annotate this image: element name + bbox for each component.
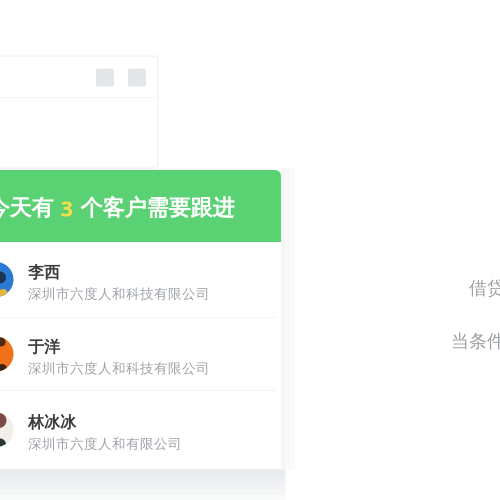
staticText: 李西 xyxy=(28,262,60,283)
button[interactable]: 李西 xyxy=(0,242,281,317)
staticText: 3 xyxy=(60,193,73,223)
staticText: 借贷 xyxy=(469,277,500,300)
staticText: 深圳市六度人和有限公司 xyxy=(28,436,182,453)
staticText: 个客户需要跟进 xyxy=(73,194,234,222)
button[interactable]: 于洋 xyxy=(0,318,281,390)
staticText: 今天有 xyxy=(0,194,60,222)
staticText: 于洋 xyxy=(28,337,60,357)
staticText: 林冰冰 xyxy=(28,412,76,433)
staticText: 深圳市六度人和科技有限公司 xyxy=(28,286,210,303)
button[interactable]: 林冰冰 xyxy=(0,391,281,468)
staticText: 当条件 xyxy=(451,330,500,353)
staticText: 深圳市六度人和科技有限公司 xyxy=(28,360,210,377)
